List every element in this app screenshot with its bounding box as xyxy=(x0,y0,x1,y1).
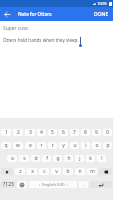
button[interactable]: f xyxy=(42,155,51,162)
button[interactable]: x xyxy=(27,168,37,175)
staticText: r xyxy=(40,142,43,149)
button[interactable]: ?123 xyxy=(1,181,15,188)
staticText: m xyxy=(90,168,95,175)
button[interactable]: Enter xyxy=(90,181,112,188)
staticText: 6 xyxy=(62,129,65,136)
button[interactable]: e xyxy=(25,142,35,149)
staticText: 4 xyxy=(40,129,43,136)
button[interactable]: k xyxy=(86,155,95,162)
staticText: l xyxy=(101,155,103,162)
button[interactable]: 6 xyxy=(59,129,68,136)
staticText: DONE xyxy=(94,11,109,18)
button[interactable]: z xyxy=(15,168,25,175)
staticText: w xyxy=(16,142,20,149)
button[interactable]: v xyxy=(51,168,61,175)
button[interactable]: j xyxy=(75,155,84,162)
button[interactable]: n xyxy=(75,168,85,175)
button[interactable]: i xyxy=(81,142,90,149)
button[interactable]: m xyxy=(87,168,97,175)
button[interactable]: u xyxy=(70,142,79,149)
staticText: ‹ English (US) › xyxy=(39,182,68,187)
staticText: v xyxy=(55,168,58,175)
button[interactable]: 5 xyxy=(48,129,57,136)
staticText: g xyxy=(56,155,60,162)
button[interactable]: 1 xyxy=(1,129,11,136)
staticText: h xyxy=(67,155,71,162)
staticText: a xyxy=(11,155,14,162)
staticText: 3 xyxy=(29,129,32,136)
staticText: . xyxy=(83,181,85,188)
button[interactable]: p xyxy=(103,142,112,149)
button[interactable]: g xyxy=(53,155,62,162)
staticText: k xyxy=(89,155,92,162)
staticText: t xyxy=(52,142,54,149)
staticText: b xyxy=(66,168,70,175)
staticText: x xyxy=(31,168,34,175)
staticText: 8 xyxy=(84,129,87,136)
staticText: 0 xyxy=(106,129,109,136)
button[interactable]: s xyxy=(19,155,29,162)
staticText: 1 xyxy=(5,129,8,136)
button[interactable]: Backspace xyxy=(99,168,112,175)
staticText: d xyxy=(34,155,38,162)
staticText: o xyxy=(95,142,99,149)
staticText: e xyxy=(29,142,32,149)
staticText: Otters hold hands when they sleep. xyxy=(3,37,79,43)
staticText: Note for Otters xyxy=(18,11,52,17)
staticText: z xyxy=(19,168,22,175)
staticText: c xyxy=(43,168,46,175)
staticText: u xyxy=(73,142,77,149)
staticText: 9 xyxy=(95,129,98,136)
button[interactable]: c xyxy=(39,168,49,175)
staticText: f xyxy=(46,155,48,162)
button[interactable]: y xyxy=(59,142,68,149)
button[interactable]: 2 xyxy=(13,129,23,136)
staticText: 7 xyxy=(73,129,76,136)
staticText: Super cute. xyxy=(3,25,29,32)
button[interactable]: q xyxy=(1,142,11,149)
button[interactable]: a xyxy=(7,155,17,162)
staticText: j xyxy=(79,155,81,162)
button[interactable]: l xyxy=(97,155,106,162)
button[interactable]: d xyxy=(31,155,40,162)
button[interactable]: Back xyxy=(0,7,14,21)
button[interactable]: ‹ English (US) › xyxy=(29,181,77,188)
button[interactable]: t xyxy=(48,142,57,149)
button[interactable]: 8 xyxy=(81,129,90,136)
staticText: y xyxy=(62,142,65,149)
button[interactable]: r xyxy=(37,142,46,149)
button[interactable]: 9 xyxy=(92,129,101,136)
button[interactable]: w xyxy=(13,142,23,149)
staticText: q xyxy=(4,142,8,149)
staticText: 100% xyxy=(97,1,108,6)
button[interactable]: 3 xyxy=(25,129,35,136)
button[interactable]: h xyxy=(64,155,73,162)
staticText: n xyxy=(78,168,82,175)
button[interactable]: 0 xyxy=(103,129,112,136)
button[interactable]: DONE xyxy=(90,7,113,21)
staticText: ?123 xyxy=(3,181,14,188)
button[interactable]: 7 xyxy=(70,129,79,136)
button[interactable]: Shift xyxy=(1,168,13,175)
button[interactable]: Emoji xyxy=(17,181,27,188)
staticText: s xyxy=(23,155,26,162)
button[interactable]: 4 xyxy=(37,129,46,136)
staticText: p xyxy=(106,142,110,149)
button[interactable]: b xyxy=(63,168,73,175)
button[interactable]: . xyxy=(79,181,88,188)
staticText: i xyxy=(85,142,87,149)
staticText: 5 xyxy=(51,129,54,136)
staticText: 2 xyxy=(17,129,20,136)
button[interactable]: o xyxy=(92,142,101,149)
